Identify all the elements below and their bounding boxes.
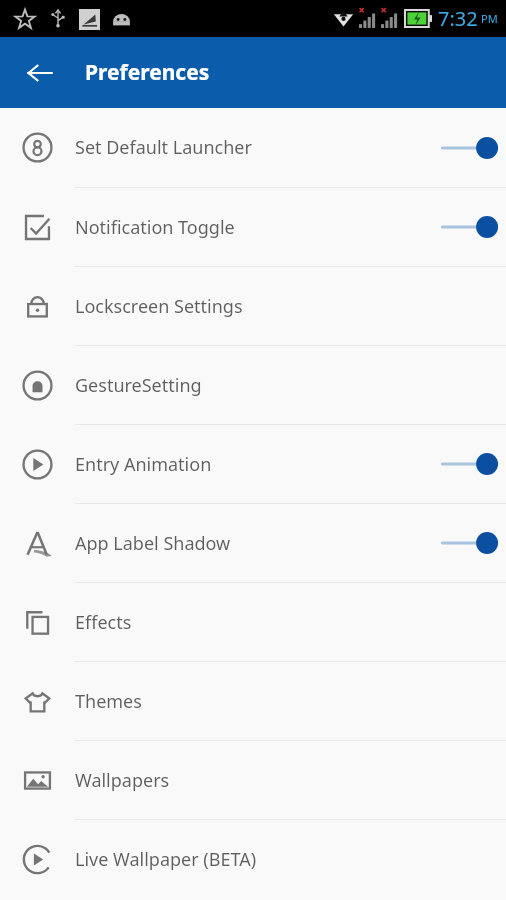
button[interactable]: Set Default Launcher (0, 108, 506, 187)
staticText: Wallpapers (75, 768, 490, 793)
button[interactable]: Toggle (436, 444, 500, 484)
staticText: App Label Shadow (75, 531, 432, 556)
button[interactable]: Lockscreen Settings (0, 267, 506, 345)
staticText: Live Wallpaper (BETA) (75, 847, 490, 872)
staticText: 7:32 (438, 5, 478, 32)
button[interactable]: Themes (0, 662, 506, 740)
button[interactable]: GestureSetting (0, 346, 506, 424)
button[interactable]: Back (20, 53, 60, 93)
staticText: Lockscreen Settings (75, 294, 490, 319)
button[interactable]: Live Wallpaper (BETA) (0, 820, 506, 898)
staticText: Entry Animation (75, 452, 432, 477)
button[interactable]: Toggle (436, 128, 500, 168)
staticText: PM (481, 11, 498, 26)
staticText: GestureSetting (75, 373, 490, 398)
staticText: Preferences (85, 58, 210, 87)
staticText: Themes (75, 689, 490, 714)
button[interactable]: Toggle (436, 207, 500, 247)
staticText: Notification Toggle (75, 215, 432, 240)
button[interactable]: App Label Shadow (0, 504, 506, 582)
staticText: Set Default Launcher (75, 135, 432, 160)
button[interactable]: Wallpapers (0, 741, 506, 819)
button[interactable]: Toggle (436, 523, 500, 563)
button[interactable]: Effects (0, 583, 506, 661)
button[interactable]: Notification Toggle (0, 188, 506, 266)
button[interactable]: Entry Animation (0, 425, 506, 503)
staticText: Effects (75, 610, 490, 635)
